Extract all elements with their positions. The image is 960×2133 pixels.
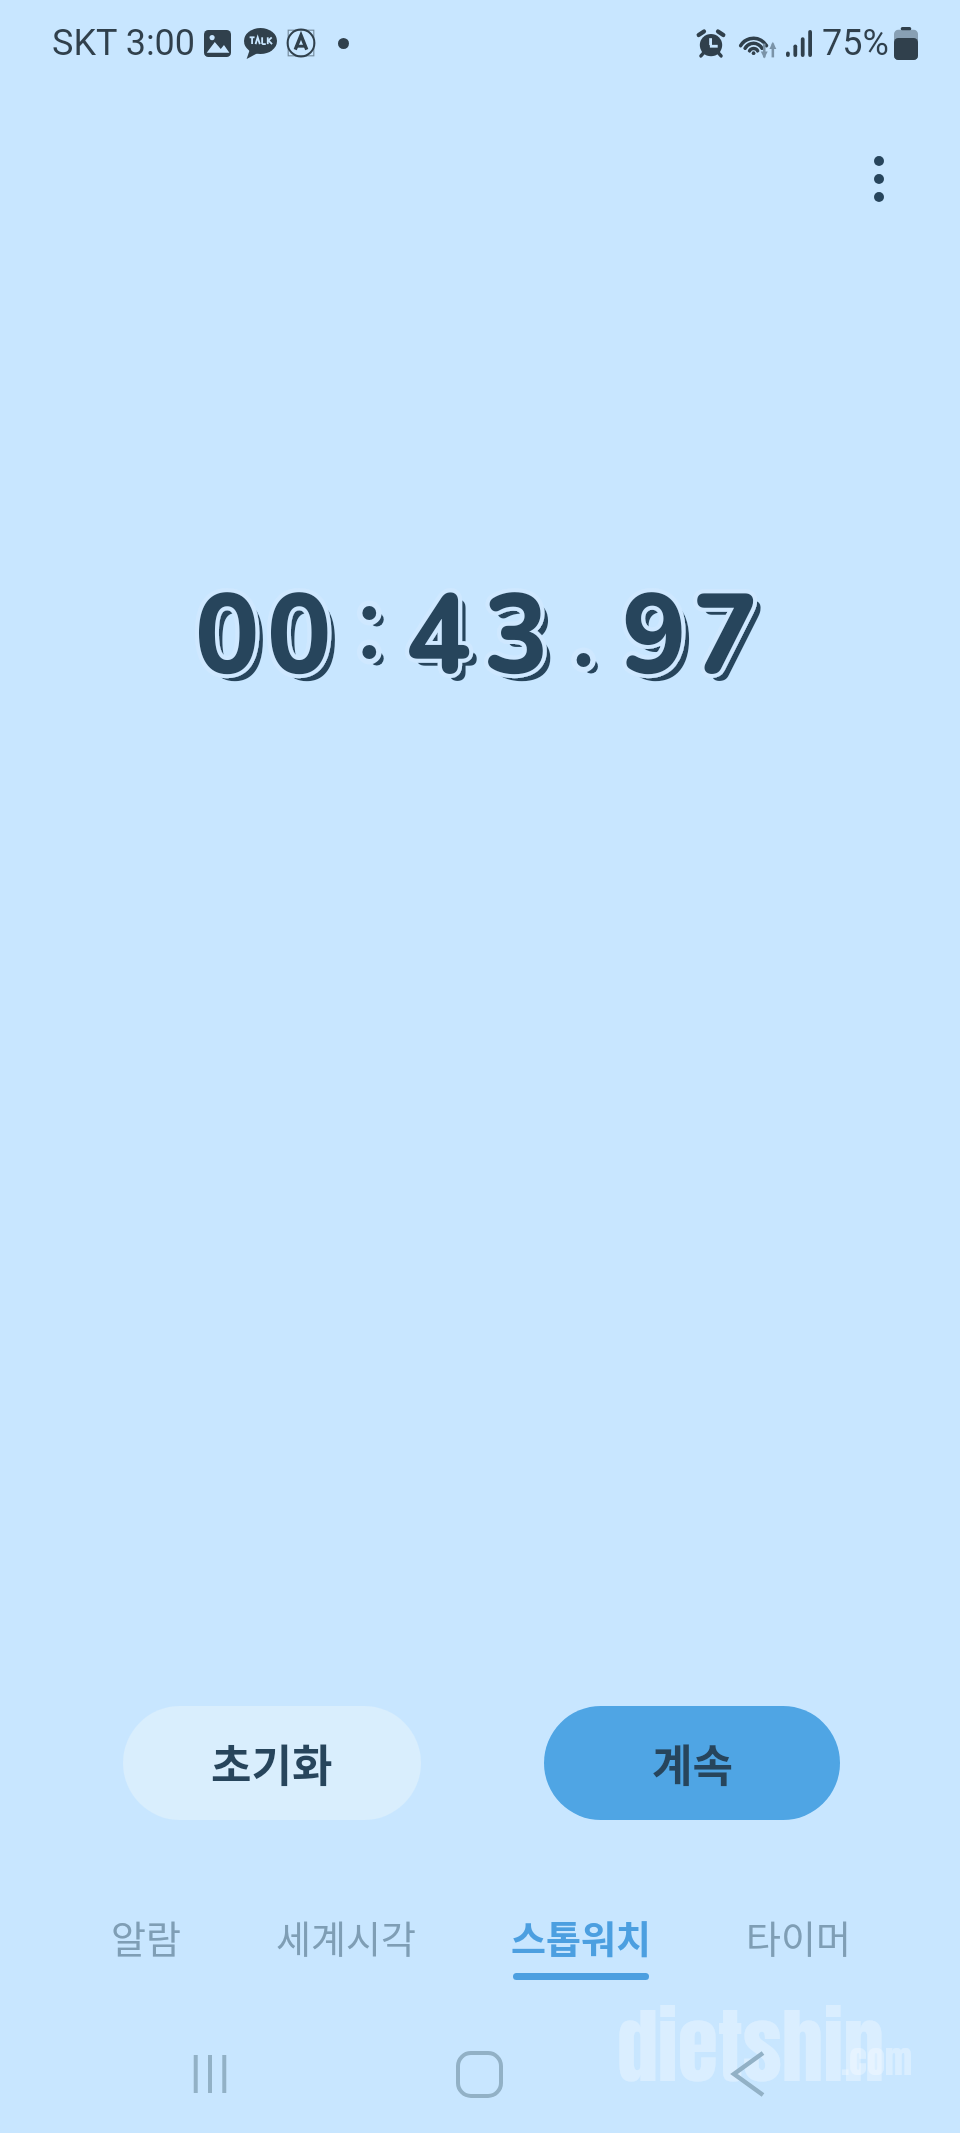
- staticText: 75%: [822, 22, 889, 64]
- button[interactable]: 초기화: [123, 1706, 421, 1820]
- staticText: 계속: [652, 1731, 733, 1795]
- button[interactable]: Back: [693, 2019, 803, 2129]
- staticText: 세계시각: [276, 1909, 416, 1964]
- button[interactable]: 타이머: [738, 1909, 858, 1964]
- button[interactable]: 계속: [544, 1706, 840, 1820]
- button[interactable]: Home: [424, 2019, 534, 2129]
- staticText: SKT 3:00: [52, 22, 196, 64]
- staticText: .com: [841, 2033, 913, 2087]
- button[interactable]: More options: [834, 134, 924, 224]
- staticText: dietshin: [617, 1985, 885, 2108]
- button[interactable]: Recent apps: [155, 2019, 265, 2129]
- button[interactable]: 세계시각: [266, 1909, 426, 1964]
- button[interactable]: 알람: [86, 1909, 206, 1964]
- staticText: 알람: [111, 1909, 181, 1964]
- staticText: 초기화: [211, 1731, 333, 1795]
- staticText: 스톱워치: [511, 1909, 651, 1964]
- button[interactable]: 스톱워치: [501, 1909, 661, 1980]
- staticText: 타이머: [746, 1909, 851, 1964]
